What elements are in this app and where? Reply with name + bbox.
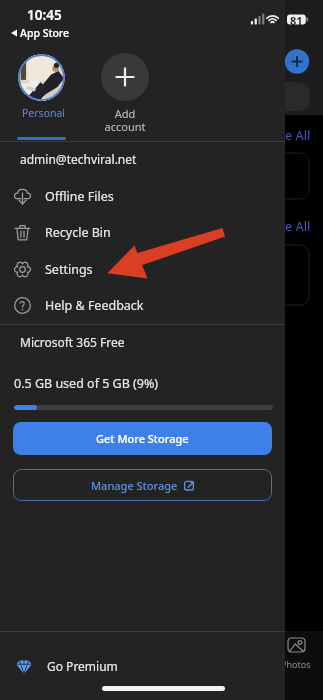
staticText: Settings [45, 261, 93, 278]
button[interactable]: Settings [0, 251, 285, 287]
button[interactable]: See All [271, 127, 311, 144]
button[interactable]: Help & Feedback [0, 287, 285, 323]
staticText: Manage Storage [91, 478, 178, 493]
button[interactable]: Recycle Bin [0, 214, 285, 250]
button[interactable]: Photos [281, 636, 311, 670]
staticText: 81 [290, 13, 303, 28]
staticText: App Store [20, 26, 70, 40]
staticText: Offline Files [45, 188, 114, 205]
staticText: 10:45 [27, 6, 62, 24]
button[interactable]: Personal [22, 106, 66, 120]
button[interactable]: Get More Storage [13, 422, 272, 455]
button[interactable]: Go Premium [0, 632, 285, 700]
staticText: Add account [97, 106, 153, 134]
button[interactable]: Manage Storage [13, 469, 272, 501]
staticText: Microsoft 365 Free [20, 334, 125, 350]
button[interactable]: Personal account [18, 54, 65, 101]
staticText: Get More Storage [96, 431, 189, 446]
staticText: 0.5 GB used of 5 GB (9%) [14, 375, 159, 392]
staticText: admin@techviral.net [20, 151, 137, 167]
button[interactable]: Add account [101, 53, 149, 101]
button[interactable]: See All [271, 218, 311, 235]
staticText: Photos [281, 658, 311, 670]
button[interactable]: Offline Files [0, 178, 285, 214]
staticText: Go Premium [47, 658, 118, 674]
staticText: Help & Feedback [45, 297, 144, 314]
staticText: Recycle Bin [45, 224, 111, 241]
